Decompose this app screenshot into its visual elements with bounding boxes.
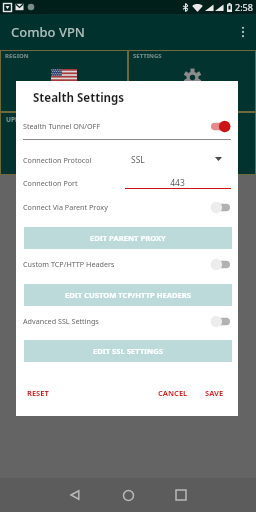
staticText: UPLOAD (6, 115, 33, 124)
staticText: Connection Protocol (23, 155, 92, 165)
staticText: SETTINGS (133, 52, 162, 60)
staticText: RESET (27, 388, 49, 398)
button[interactable]: Stealth Tunnel ON/OFF (16, 118, 238, 134)
staticText: Connect Via Parent Proxy (23, 202, 108, 212)
staticText: Connection Port (23, 178, 78, 188)
button[interactable]: Recents (167, 481, 195, 509)
staticText: REGION (5, 52, 29, 60)
staticText: EDIT SSL SETTINGS (93, 346, 163, 356)
button[interactable]: EDIT SSL SETTINGS (24, 340, 232, 362)
button[interactable]: UPLOAD (0, 112, 256, 175)
button[interactable]: Custom TCP/HTTP Headers (16, 256, 238, 272)
button[interactable]: CANCEL (153, 384, 193, 402)
staticText: Combo VPN (11, 23, 85, 41)
staticText: EDIT CUSTOM TCP/HTTP HEADERS (65, 290, 191, 300)
staticText: 2:58 (235, 1, 253, 13)
button[interactable]: Home (114, 481, 142, 509)
staticText: EDIT PARENT PROXY (90, 233, 166, 243)
button[interactable]: SETTINGS (128, 50, 256, 112)
staticText: Stealth Tunnel ON/OFF (23, 121, 100, 131)
button[interactable]: EDIT CUSTOM TCP/HTTP HEADERS (24, 284, 232, 306)
button[interactable]: Back (61, 481, 89, 509)
staticText: Advanced SSL Settings (23, 316, 99, 326)
button[interactable]: RESET (23, 384, 53, 402)
button[interactable]: Connect Via Parent Proxy (16, 199, 238, 215)
button[interactable]: EDIT PARENT PROXY (24, 227, 232, 249)
staticText: CANCEL (158, 388, 188, 398)
staticText: SAVE (205, 388, 224, 398)
button[interactable]: More options (230, 14, 256, 50)
button[interactable]: REGION (0, 50, 128, 112)
button[interactable]: SAVE (200, 384, 229, 402)
staticText: 443 (124, 177, 231, 189)
button[interactable]: Advanced SSL Settings (16, 313, 238, 329)
button[interactable]: Connection Protocol (16, 152, 238, 168)
staticText: Stealth Settings (33, 90, 125, 106)
staticText: Custom TCP/HTTP Headers (23, 259, 115, 269)
staticText: SSL (131, 154, 145, 166)
